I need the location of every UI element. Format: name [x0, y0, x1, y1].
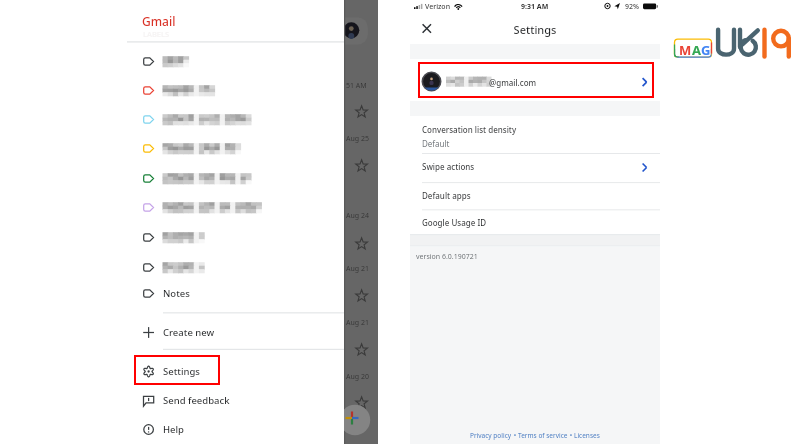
button[interactable]: Label [130, 134, 344, 163]
button[interactable]: Label [130, 253, 344, 282]
button[interactable]: Star [354, 288, 370, 304]
staticText: LABELS [143, 29, 170, 39]
staticText: 92% [625, 2, 639, 12]
staticText: Help [163, 423, 185, 436]
button[interactable]: Label [130, 76, 344, 105]
button[interactable]: Settings [130, 357, 344, 386]
staticText: • [568, 431, 574, 440]
button[interactable]: Star [354, 104, 370, 120]
staticText: • [512, 431, 518, 440]
button[interactable]: Send feedback [130, 386, 344, 415]
button[interactable]: Star [354, 158, 370, 174]
staticText: Settings [410, 22, 660, 37]
staticText: Aug 20 [346, 372, 369, 382]
staticText: Conversation list density [422, 124, 517, 135]
staticText: Default apps [422, 190, 471, 201]
button[interactable]: Star [354, 342, 370, 358]
staticText: M [679, 41, 692, 59]
staticText: 51 AM [346, 81, 367, 91]
staticText: Swipe actions [422, 161, 475, 172]
button[interactable]: Help [130, 415, 344, 444]
button[interactable]: Terms of service [518, 431, 568, 440]
staticText: Google Usage ID [422, 217, 487, 228]
staticText: G [701, 41, 711, 59]
staticText: Settings [163, 365, 200, 378]
staticText: version 6.0.190721 [416, 252, 478, 262]
button[interactable]: Google Usage ID [410, 209, 660, 235]
button[interactable]: Privacy policy [470, 431, 512, 440]
button[interactable]: Swipe actions [410, 153, 660, 182]
button[interactable]: Conversation list density [410, 116, 660, 153]
button[interactable]: Star [354, 236, 370, 252]
button[interactable]: Label [130, 105, 344, 134]
staticText: A [692, 41, 701, 59]
button[interactable]: Star [354, 395, 370, 411]
button[interactable]: Compose [340, 405, 370, 435]
button[interactable]: Notes [130, 279, 344, 308]
button[interactable]: Gmail [127, 6, 344, 40]
button[interactable] [410, 59, 660, 101]
staticText: Notes [163, 287, 190, 300]
staticText: Verizon [425, 2, 451, 12]
button[interactable]: Label [130, 223, 344, 252]
button[interactable]: Label [130, 164, 344, 193]
button[interactable]: Default apps [410, 182, 660, 209]
staticText: Aug 24 [346, 211, 369, 221]
staticText: @gmail.com [489, 77, 537, 88]
button[interactable]: Label [130, 47, 344, 76]
staticText: 9:31 AM [521, 2, 549, 12]
staticText: Default [422, 138, 450, 149]
button[interactable]: Create new [130, 318, 344, 347]
staticText: Create new [163, 326, 215, 339]
staticText: Gmail [142, 13, 176, 29]
staticText: Aug 21 [346, 318, 369, 328]
staticText: Send feedback [163, 394, 230, 407]
staticText: Aug 21 [346, 264, 369, 274]
staticText: Aug 25 [346, 134, 369, 144]
button[interactable]: Label [130, 193, 344, 222]
button[interactable]: Close [415, 17, 439, 41]
button[interactable]: Licenses [574, 431, 600, 440]
